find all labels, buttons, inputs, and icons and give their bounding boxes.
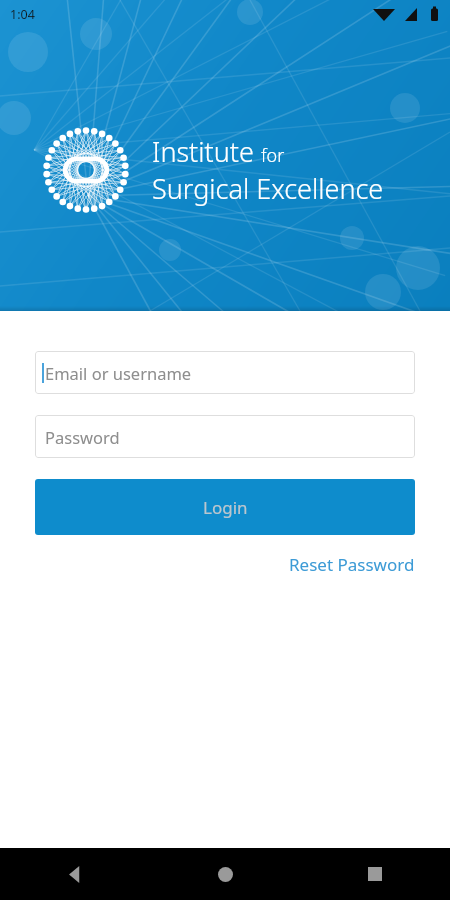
staticText: Password [45, 426, 120, 448]
button[interactable]: Home [150, 848, 300, 900]
staticText: Email or username [45, 362, 192, 384]
button[interactable]: Login [35, 479, 415, 535]
button[interactable]: Recent apps [300, 848, 450, 900]
button[interactable]: Back [0, 848, 150, 900]
staticText: Surgical Excellence [152, 170, 384, 207]
staticText: 1:04 [10, 6, 35, 23]
staticText: for [261, 143, 285, 168]
button[interactable]: Password [35, 415, 415, 458]
staticText: Institute [152, 133, 254, 170]
staticText: Login [203, 496, 248, 519]
button[interactable]: Reset Password [289, 547, 415, 582]
button[interactable]: Email or username [35, 351, 415, 394]
staticText: Reset Password [289, 553, 415, 576]
